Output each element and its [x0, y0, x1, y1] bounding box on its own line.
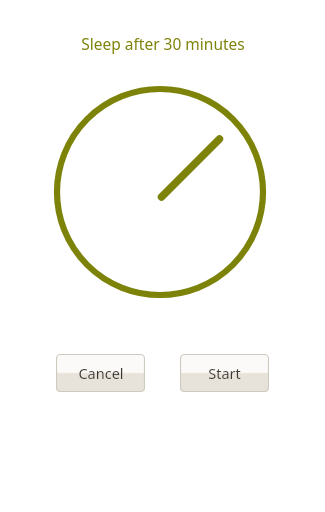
button[interactable]: Start	[180, 354, 269, 392]
staticText: Cancel	[78, 363, 124, 383]
button[interactable]: Cancel	[56, 354, 145, 392]
staticText: Sleep after 30 minutes	[81, 33, 245, 54]
staticText: Start	[208, 363, 241, 383]
